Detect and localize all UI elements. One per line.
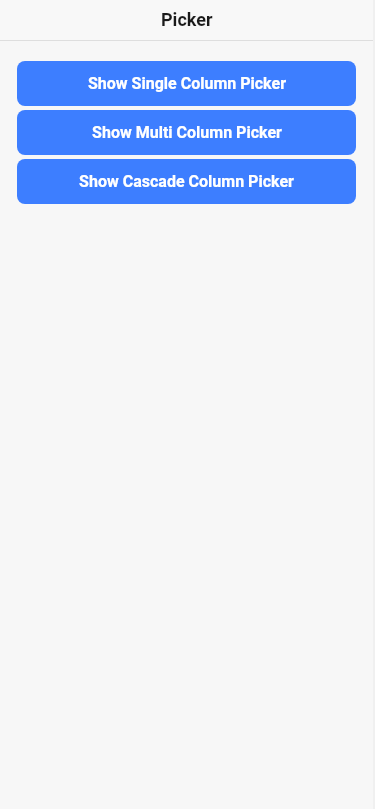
- button[interactable]: Show Single Column Picker: [17, 61, 356, 106]
- staticText: Show Cascade Column Picker: [79, 172, 294, 191]
- button[interactable]: Show Multi Column Picker: [17, 110, 356, 155]
- staticText: Show Multi Column Picker: [92, 123, 282, 142]
- staticText: Show Single Column Picker: [88, 74, 286, 93]
- button[interactable]: Show Cascade Column Picker: [17, 159, 356, 204]
- staticText: Picker: [161, 9, 213, 30]
